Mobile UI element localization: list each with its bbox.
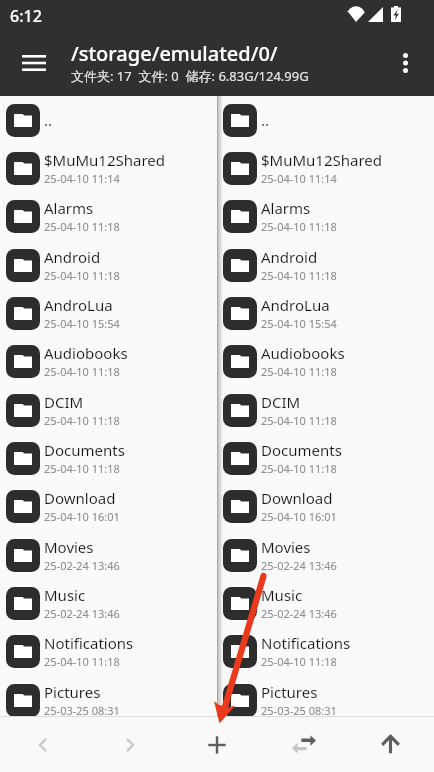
button[interactable]: $MuMu12Shared <box>0 145 217 193</box>
staticText: Audiobooks <box>261 343 345 363</box>
staticText: Alarms <box>261 198 311 218</box>
button[interactable]: .. <box>217 97 434 145</box>
staticText: .. <box>261 110 270 130</box>
staticText: Music <box>261 585 303 605</box>
button[interactable]: DCIM <box>217 387 434 435</box>
button[interactable]: AndroLua <box>217 290 434 338</box>
button[interactable]: Menu <box>10 39 58 87</box>
staticText: 25-02-24 13:46 <box>261 606 337 621</box>
button[interactable]: Swap <box>260 717 347 772</box>
button[interactable]: Audiobooks <box>217 338 434 386</box>
staticText: 25-04-10 15:54 <box>44 316 120 331</box>
staticText: $MuMu12Shared <box>44 150 165 170</box>
staticText: 25-04-10 11:18 <box>44 461 120 476</box>
staticText: .. <box>44 110 53 130</box>
button[interactable]: Notifications <box>0 628 217 676</box>
staticText: Android <box>44 247 101 267</box>
staticText: 25-04-10 11:14 <box>44 171 120 186</box>
button[interactable]: AndroLua <box>0 290 217 338</box>
button[interactable]: Music <box>217 580 434 628</box>
staticText: 25-04-10 11:18 <box>44 654 120 669</box>
staticText: Documents <box>44 440 125 460</box>
staticText: 25-04-10 11:18 <box>44 413 120 428</box>
staticText: Download <box>261 488 333 508</box>
staticText: Android <box>261 247 318 267</box>
staticText: 25-04-10 15:54 <box>261 316 337 331</box>
staticText: 25-04-10 11:18 <box>261 413 337 428</box>
staticText: 25-04-10 11:18 <box>44 219 120 234</box>
button[interactable]: Alarms <box>217 193 434 241</box>
button[interactable]: Music <box>0 580 217 628</box>
button[interactable]: Documents <box>217 435 434 483</box>
button[interactable]: Download <box>0 483 217 531</box>
staticText: DCIM <box>261 392 301 412</box>
staticText: 25-04-10 16:01 <box>261 509 337 524</box>
button[interactable]: Android <box>0 242 217 290</box>
staticText: 25-04-10 11:18 <box>261 654 337 669</box>
staticText: 25-04-10 11:18 <box>44 268 120 283</box>
button[interactable]: DCIM <box>0 387 217 435</box>
button[interactable]: Back <box>0 717 86 772</box>
staticText: Documents <box>261 440 342 460</box>
staticText: 25-04-10 11:18 <box>261 219 337 234</box>
staticText: 25-03-25 08:31 <box>44 703 120 716</box>
staticText: 25-04-10 11:18 <box>261 268 337 283</box>
staticText: 25-02-24 13:46 <box>44 606 120 621</box>
button[interactable]: More options <box>381 39 429 87</box>
staticText: $MuMu12Shared <box>261 150 382 170</box>
staticText: Alarms <box>44 198 94 218</box>
button[interactable]: Forward <box>86 717 173 772</box>
button[interactable]: Up <box>347 717 434 772</box>
staticText: Download <box>44 488 116 508</box>
staticText: 25-04-10 11:18 <box>261 364 337 379</box>
button[interactable]: Download <box>217 483 434 531</box>
button[interactable]: Notifications <box>217 628 434 676</box>
staticText: Movies <box>261 537 311 557</box>
staticText: 25-04-10 16:01 <box>44 509 120 524</box>
button[interactable]: .. <box>0 97 217 145</box>
button[interactable]: Movies <box>0 532 217 580</box>
staticText: 25-04-10 11:18 <box>44 364 120 379</box>
staticText: AndroLua <box>44 295 113 315</box>
staticText: Audiobooks <box>44 343 128 363</box>
staticText: 25-04-10 11:14 <box>261 171 337 186</box>
button[interactable]: Add <box>173 717 260 772</box>
staticText: 25-03-25 08:31 <box>261 703 337 716</box>
button[interactable]: Android <box>217 242 434 290</box>
staticText: Movies <box>44 537 94 557</box>
staticText: Music <box>44 585 86 605</box>
button[interactable]: $MuMu12Shared <box>217 145 434 193</box>
button[interactable]: Documents <box>0 435 217 483</box>
staticText: 25-02-24 13:46 <box>44 558 120 573</box>
staticText: /storage/emulated/0/ <box>71 40 278 67</box>
button[interactable]: Pictures <box>217 677 434 716</box>
button[interactable]: Pictures <box>0 677 217 716</box>
staticText: 25-04-10 11:18 <box>261 461 337 476</box>
staticText: AndroLua <box>261 295 330 315</box>
staticText: Pictures <box>44 682 101 702</box>
staticText: Notifications <box>261 633 351 653</box>
staticText: Pictures <box>261 682 318 702</box>
staticText: DCIM <box>44 392 84 412</box>
button[interactable]: Audiobooks <box>0 338 217 386</box>
button[interactable]: Movies <box>217 532 434 580</box>
staticText: Notifications <box>44 633 134 653</box>
button[interactable]: Alarms <box>0 193 217 241</box>
staticText: 6:12 <box>10 5 42 27</box>
staticText: 25-02-24 13:46 <box>261 558 337 573</box>
staticText: 文件夹: 17 文件: 0 储存: 6.83G/124.99G <box>71 67 309 85</box>
